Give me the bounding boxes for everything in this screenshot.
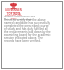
staticText: Ministry of Education, New Delhi [4,11,23,20]
staticText: Ministry of Electronics and Information … [4,14,40,20]
staticText: GOVERNMENT OF INDIA [5,8,22,16]
staticText: This is to certify that the above named … [4,18,52,43]
